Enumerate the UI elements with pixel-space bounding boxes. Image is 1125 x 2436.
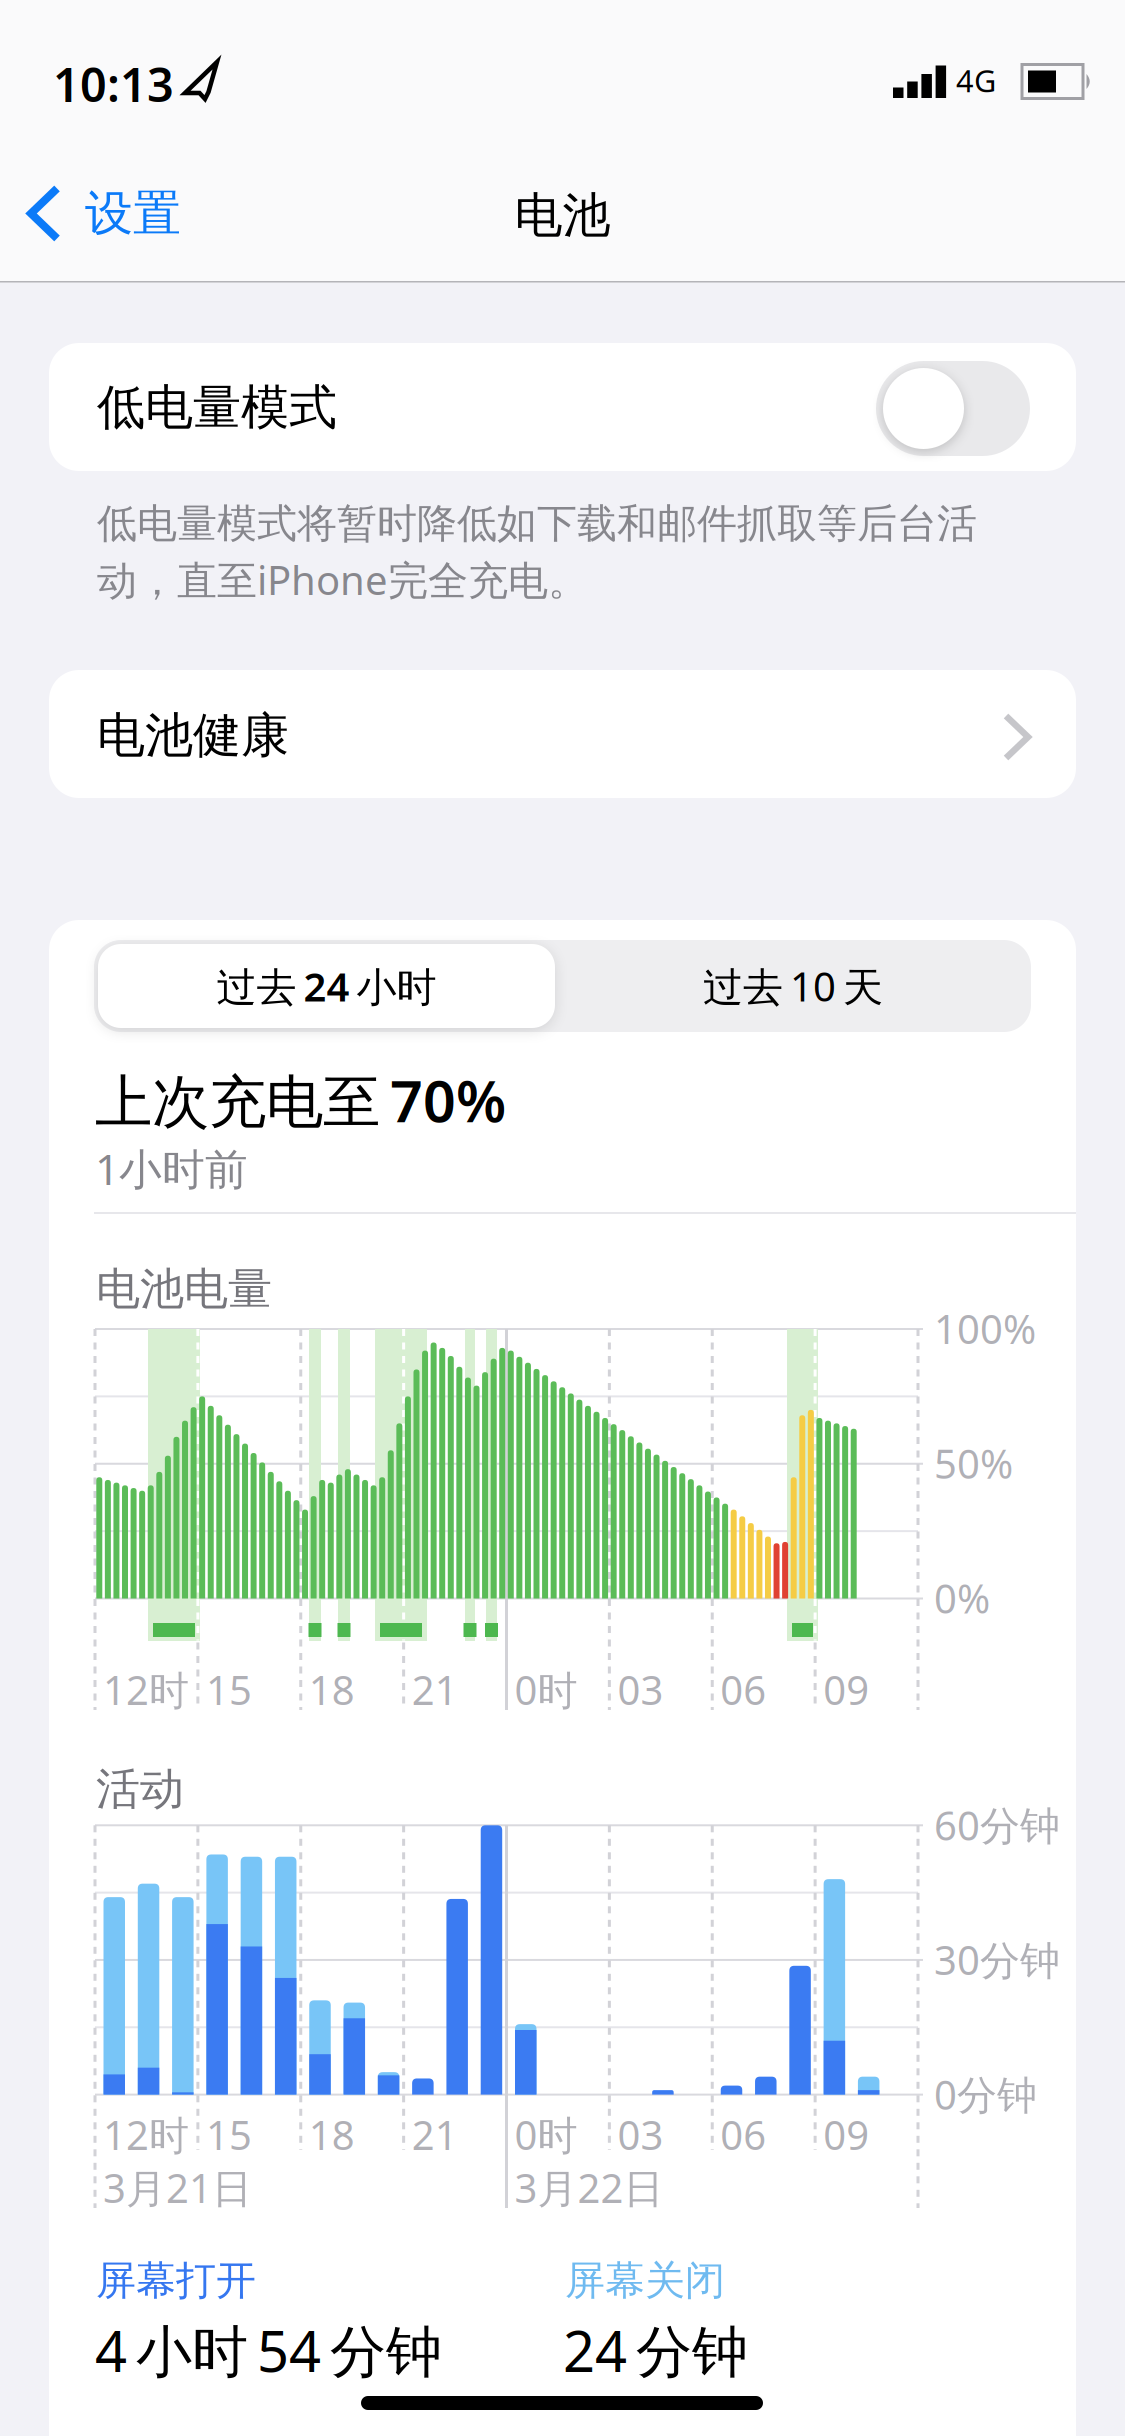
staticText: 12时 (103, 1663, 189, 1716)
button[interactable]: 过去 24 小时 (98, 944, 555, 1028)
staticText: 10:13 (53, 53, 174, 115)
button[interactable]: 电池健康 (49, 670, 1076, 798)
staticText: 15 (206, 2108, 252, 2161)
staticText: 03 (617, 2108, 663, 2161)
staticText: 18 (309, 1663, 355, 1716)
staticText: 30分钟 (934, 1933, 1060, 1986)
staticText: 屏幕关闭 (565, 2256, 725, 2305)
button[interactable]: 过去 10 天 (558, 944, 1028, 1028)
staticText: 3月21日 (103, 2161, 252, 2214)
staticText: 4 小时 54 分钟 (95, 2313, 442, 2387)
staticText: 0时 (514, 1663, 577, 1716)
staticText: 06 (720, 2108, 766, 2161)
staticText: 60分钟 (934, 1798, 1060, 1851)
staticText: 12时 (103, 2108, 189, 2161)
staticText: 0% (934, 1571, 990, 1625)
staticText: 15 (206, 1663, 252, 1716)
staticText: 过去 24 小时 (216, 959, 436, 1012)
staticText: 24 分钟 (563, 2313, 748, 2387)
staticText: 0分钟 (934, 2068, 1037, 2121)
staticText: 动，直至iPhone完全充电。 (97, 553, 588, 606)
staticText: 低电量模式将暂时降低如下载和邮件抓取等后台活 (97, 499, 977, 548)
staticText: 50% (934, 1437, 1013, 1490)
staticText: 电池电量 (96, 1262, 272, 1316)
staticText: 电池健康 (97, 706, 289, 765)
staticText: 活动 (96, 1762, 184, 1816)
staticText: 电池 (514, 186, 610, 245)
staticText: 09 (823, 1663, 869, 1716)
staticText: 屏幕打开 (96, 2256, 256, 2305)
button[interactable]: 低电量模式 (876, 361, 1030, 456)
staticText: 18 (309, 2108, 355, 2161)
staticText: 06 (720, 1663, 766, 1716)
staticText: 上次充电至 70% (95, 1062, 506, 1138)
staticText: 4G (956, 60, 996, 101)
staticText: 09 (823, 2108, 869, 2161)
staticText: 3月22日 (514, 2161, 663, 2214)
staticText: 低电量模式 (97, 378, 337, 437)
staticText: 100% (934, 1302, 1036, 1355)
staticText: 设置 (85, 184, 181, 243)
staticText: 21 (412, 1663, 458, 1716)
staticText: 过去 10 天 (703, 959, 883, 1012)
staticText: 1小时前 (95, 1140, 248, 1197)
button[interactable]: 设置 (27, 184, 181, 243)
staticText: 0时 (514, 2108, 577, 2161)
staticText: 03 (617, 1663, 663, 1716)
staticText: 21 (412, 2108, 458, 2161)
